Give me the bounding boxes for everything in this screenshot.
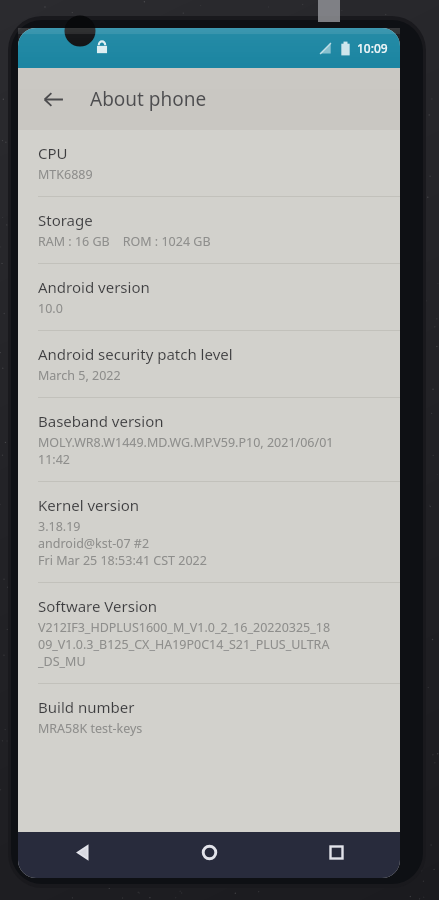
staticText: V212IF3_HDPLUS1600_M_V1.0_2_16_20220325_… [38, 619, 331, 636]
button[interactable]: Back [32, 78, 74, 120]
button[interactable]: Home [146, 832, 273, 878]
staticText: 11:42 [38, 451, 70, 468]
staticText: 09_V1.0.3_B125_CX_HA19P0C14_S21_PLUS_ULT… [38, 636, 330, 653]
staticText: RAM : 16 GB ROM : 1024 GB [38, 233, 211, 250]
staticText: Android version [38, 277, 150, 297]
button[interactable]: Back [18, 832, 146, 878]
button[interactable]: Software Version [18, 583, 400, 683]
staticText: 10.0 [38, 300, 63, 317]
staticText: Fri Mar 25 18:53:41 CST 2022 [38, 552, 207, 569]
staticText: android@kst-07 #2 [38, 535, 150, 552]
staticText: Kernel version [38, 495, 140, 515]
staticText: 10:09 [357, 40, 388, 56]
button[interactable]: Kernel version [18, 482, 400, 582]
staticText: MTK6889 [38, 166, 93, 183]
button[interactable]: Storage [18, 197, 400, 263]
staticText: About phone [90, 86, 207, 112]
staticText: March 5, 2022 [38, 367, 121, 384]
staticText: Software Version [38, 596, 158, 616]
staticText: MOLY.WR8.W1449.MD.WG.MP.V59.P10, 2021/06… [38, 434, 334, 451]
button[interactable]: Android version [18, 264, 400, 330]
staticText: _DS_MU [38, 653, 86, 670]
button[interactable]: CPU [18, 130, 400, 196]
staticText: MRA58K test-keys [38, 720, 143, 737]
button[interactable]: Android security patch level [18, 331, 400, 397]
staticText: Storage [38, 210, 93, 230]
staticText: 3.18.19 [38, 518, 81, 535]
staticText: Build number [38, 697, 135, 717]
button[interactable]: Baseband version [18, 398, 400, 481]
button[interactable]: Build number [18, 684, 400, 750]
button[interactable]: Recent apps [273, 832, 400, 878]
staticText: CPU [38, 143, 68, 163]
staticText: Android security patch level [38, 344, 233, 364]
staticText: Baseband version [38, 411, 164, 431]
